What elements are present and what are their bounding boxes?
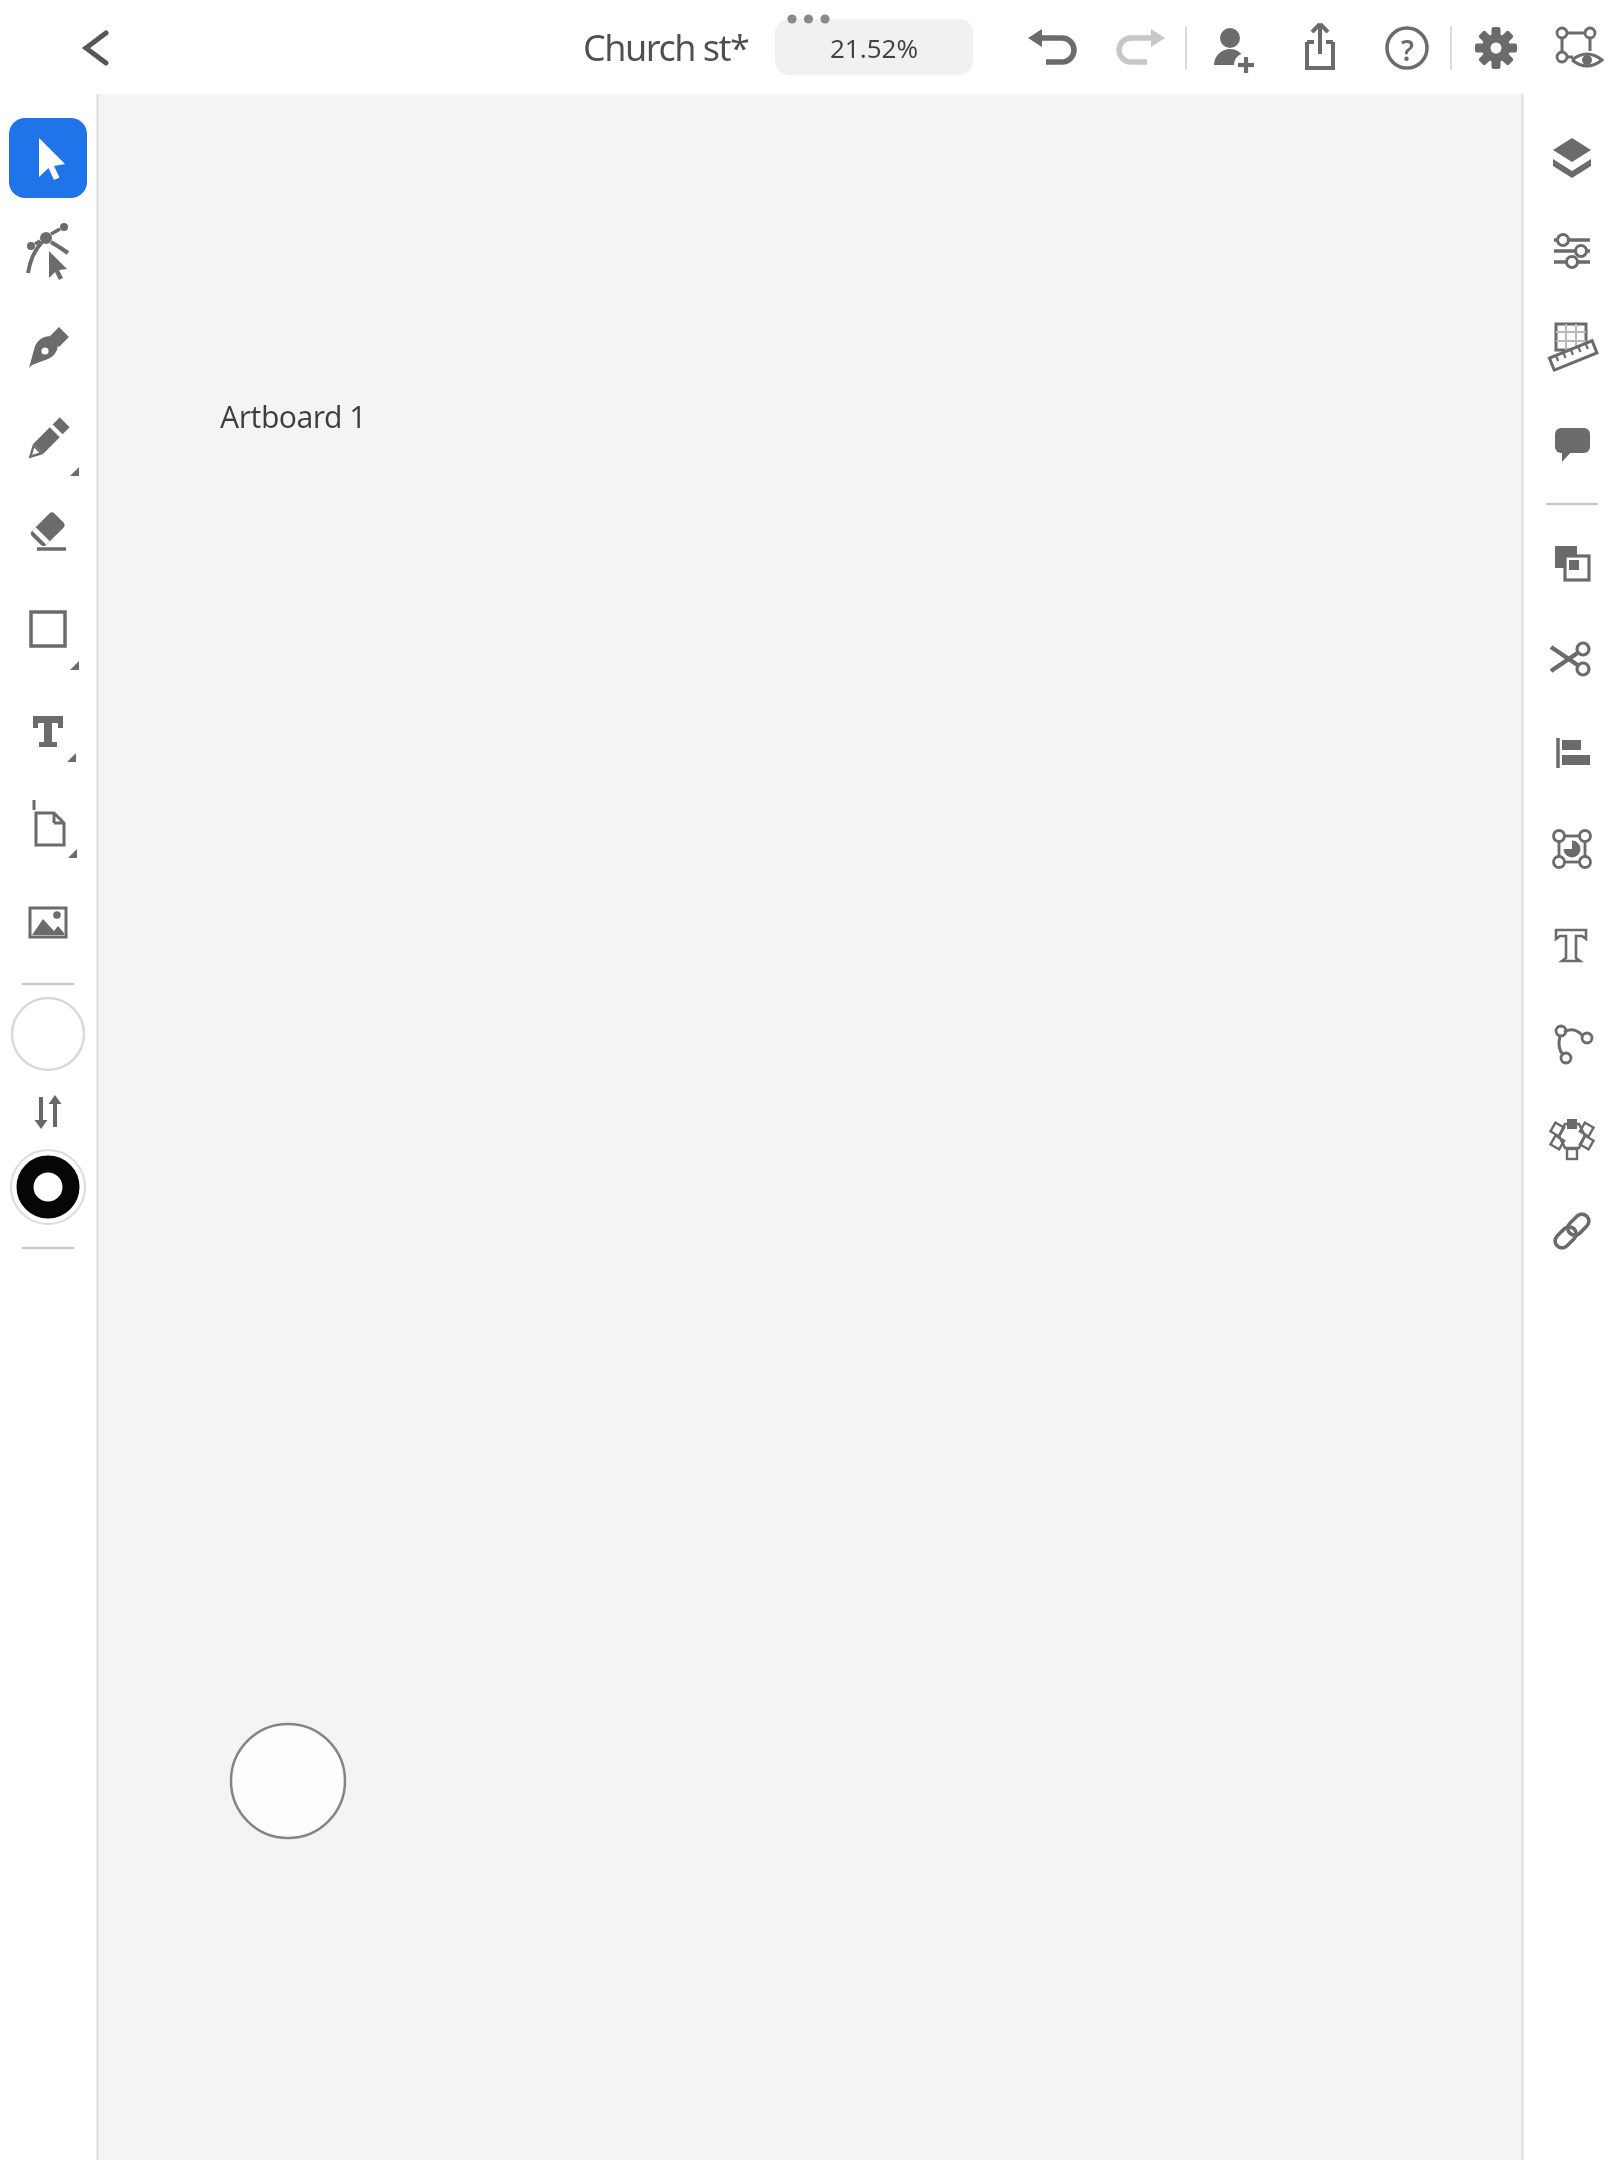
button[interactable] bbox=[1538, 815, 1606, 883]
button[interactable] bbox=[60, 20, 130, 76]
button[interactable] bbox=[1538, 121, 1606, 189]
staticText: Artboard 1 bbox=[220, 396, 367, 437]
button[interactable] bbox=[14, 794, 82, 862]
button[interactable] bbox=[1468, 20, 1524, 76]
button[interactable]: 21.52% bbox=[775, 19, 973, 75]
button[interactable] bbox=[1379, 20, 1435, 76]
button[interactable] bbox=[1292, 20, 1348, 76]
button[interactable] bbox=[14, 888, 82, 956]
button[interactable] bbox=[1538, 1102, 1606, 1170]
button[interactable] bbox=[1538, 625, 1606, 693]
button[interactable] bbox=[14, 315, 82, 383]
staticText: 21.52% bbox=[830, 30, 919, 65]
button[interactable] bbox=[1110, 20, 1166, 76]
button[interactable] bbox=[1538, 717, 1606, 785]
button[interactable] bbox=[14, 406, 82, 474]
button[interactable] bbox=[14, 1078, 82, 1146]
button[interactable] bbox=[14, 498, 82, 566]
staticText: ? bbox=[1401, 31, 1414, 65]
button[interactable] bbox=[14, 216, 82, 284]
button[interactable] bbox=[1538, 1197, 1606, 1265]
button[interactable] bbox=[1538, 529, 1606, 597]
button[interactable] bbox=[1538, 217, 1606, 285]
button[interactable] bbox=[1538, 311, 1606, 379]
button[interactable] bbox=[1538, 912, 1606, 980]
button[interactable] bbox=[1204, 20, 1260, 76]
button[interactable] bbox=[1030, 20, 1086, 76]
staticText: Church st* bbox=[583, 23, 749, 72]
button[interactable] bbox=[12, 998, 84, 1070]
button[interactable] bbox=[14, 592, 82, 660]
button[interactable] bbox=[1547, 20, 1603, 76]
button[interactable] bbox=[1538, 1006, 1606, 1074]
button[interactable] bbox=[1538, 409, 1606, 477]
button[interactable] bbox=[14, 697, 82, 765]
button[interactable] bbox=[9, 118, 87, 198]
button[interactable] bbox=[12, 1151, 84, 1223]
